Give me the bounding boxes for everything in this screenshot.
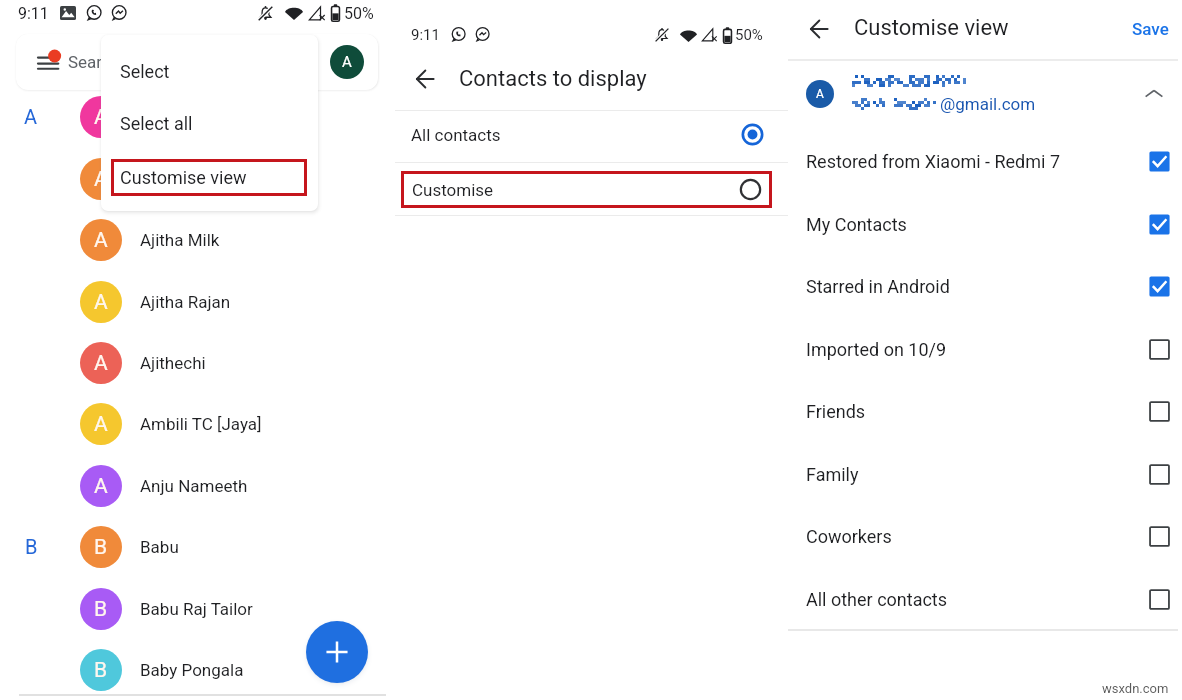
button[interactable]: Create contact: [306, 621, 368, 683]
button[interactable]: A: [0, 86, 388, 147]
staticText: B: [94, 597, 108, 622]
staticText: Babu: [140, 537, 179, 557]
button[interactable]: Save: [1129, 16, 1172, 42]
staticText: Imported on 10/9: [806, 339, 947, 360]
staticText: B: [25, 535, 38, 558]
staticText: wsxdn.com: [1102, 681, 1169, 696]
staticText: Select all: [120, 113, 193, 134]
staticText: B: [94, 658, 108, 683]
button[interactable]: Customise: [401, 171, 772, 208]
button[interactable]: A: [0, 455, 388, 516]
staticText: Select: [120, 61, 170, 82]
staticText: Ajitha Milk: [140, 230, 220, 250]
button[interactable]: Select all: [101, 97, 318, 150]
staticText: Coworkers: [806, 526, 892, 547]
staticText: B: [94, 535, 108, 560]
staticText: Anju Nameeth: [140, 476, 248, 496]
button[interactable]: Account: [330, 45, 364, 79]
button[interactable]: A: [0, 332, 388, 393]
staticText: A: [816, 87, 824, 101]
staticText: A: [24, 105, 38, 128]
staticText: Ajay: [140, 107, 173, 127]
staticText: Ajith: [140, 169, 175, 189]
button[interactable]: Select: [101, 45, 318, 97]
staticText: Customise: [412, 180, 494, 200]
staticText: Search contacts: [68, 52, 191, 72]
button[interactable]: Coworkers: [788, 505, 1182, 567]
staticText: A: [94, 228, 108, 253]
staticText: 9:11: [18, 4, 49, 23]
button[interactable]: Family: [788, 443, 1182, 505]
staticText: Friends: [806, 401, 866, 422]
staticText: Restored from Xiaomi - Redmi 7: [806, 151, 1061, 172]
staticText: A: [94, 290, 108, 315]
button[interactable]: A: [0, 148, 388, 209]
staticText: A: [94, 412, 108, 437]
staticText: Baby Pongala: [140, 660, 244, 680]
staticText: Customise view: [120, 167, 247, 188]
staticText: Starred in Android: [806, 276, 950, 297]
staticText: 50%: [735, 26, 763, 44]
button[interactable]: A: [0, 209, 388, 270]
staticText: A: [94, 351, 108, 376]
other: Open navigation menu: [38, 49, 64, 75]
button[interactable]: B: [0, 639, 388, 700]
other: Collapse account section: [1143, 83, 1165, 105]
staticText: All other contacts: [806, 589, 948, 610]
button[interactable]: Friends: [788, 380, 1182, 442]
button[interactable]: A: [0, 393, 388, 454]
button[interactable]: Starred in Android: [788, 255, 1182, 317]
button[interactable]: Imported on 10/9: [788, 318, 1182, 380]
button[interactable]: Back: [801, 11, 836, 46]
button[interactable]: Open navigation menu: [16, 34, 378, 90]
staticText: All contacts: [411, 125, 501, 145]
staticText: A: [94, 474, 108, 499]
staticText: @gmail.com: [940, 94, 1036, 114]
button[interactable]: B: [0, 578, 388, 639]
button[interactable]: All contacts: [388, 109, 788, 160]
staticText: Save: [1132, 19, 1169, 39]
staticText: A: [94, 167, 108, 192]
staticText: A: [94, 105, 108, 130]
staticText: Babu Raj Tailor: [140, 599, 253, 619]
staticText: My Contacts: [806, 214, 907, 235]
staticText: Ajithechi: [140, 353, 206, 373]
staticText: 9:11: [411, 26, 440, 44]
staticText: Family: [806, 464, 859, 485]
button[interactable]: My Contacts: [788, 193, 1182, 255]
staticText: 50%: [344, 4, 374, 23]
staticText: Ajitha Rajan: [140, 292, 231, 312]
staticText: Customise view: [854, 15, 1009, 41]
button[interactable]: Restored from Xiaomi - Redmi 7: [788, 130, 1182, 192]
button[interactable]: B: [0, 516, 388, 577]
staticText: Contacts to display: [459, 66, 647, 92]
button[interactable]: Back: [407, 61, 442, 96]
button[interactable]: A: [788, 62, 1182, 126]
staticText: Ambili TC [Jaya]: [140, 414, 262, 434]
button[interactable]: Customise view: [111, 159, 307, 196]
button[interactable]: All other contacts: [788, 568, 1182, 630]
button[interactable]: A: [0, 271, 388, 332]
staticText: A: [342, 53, 352, 71]
